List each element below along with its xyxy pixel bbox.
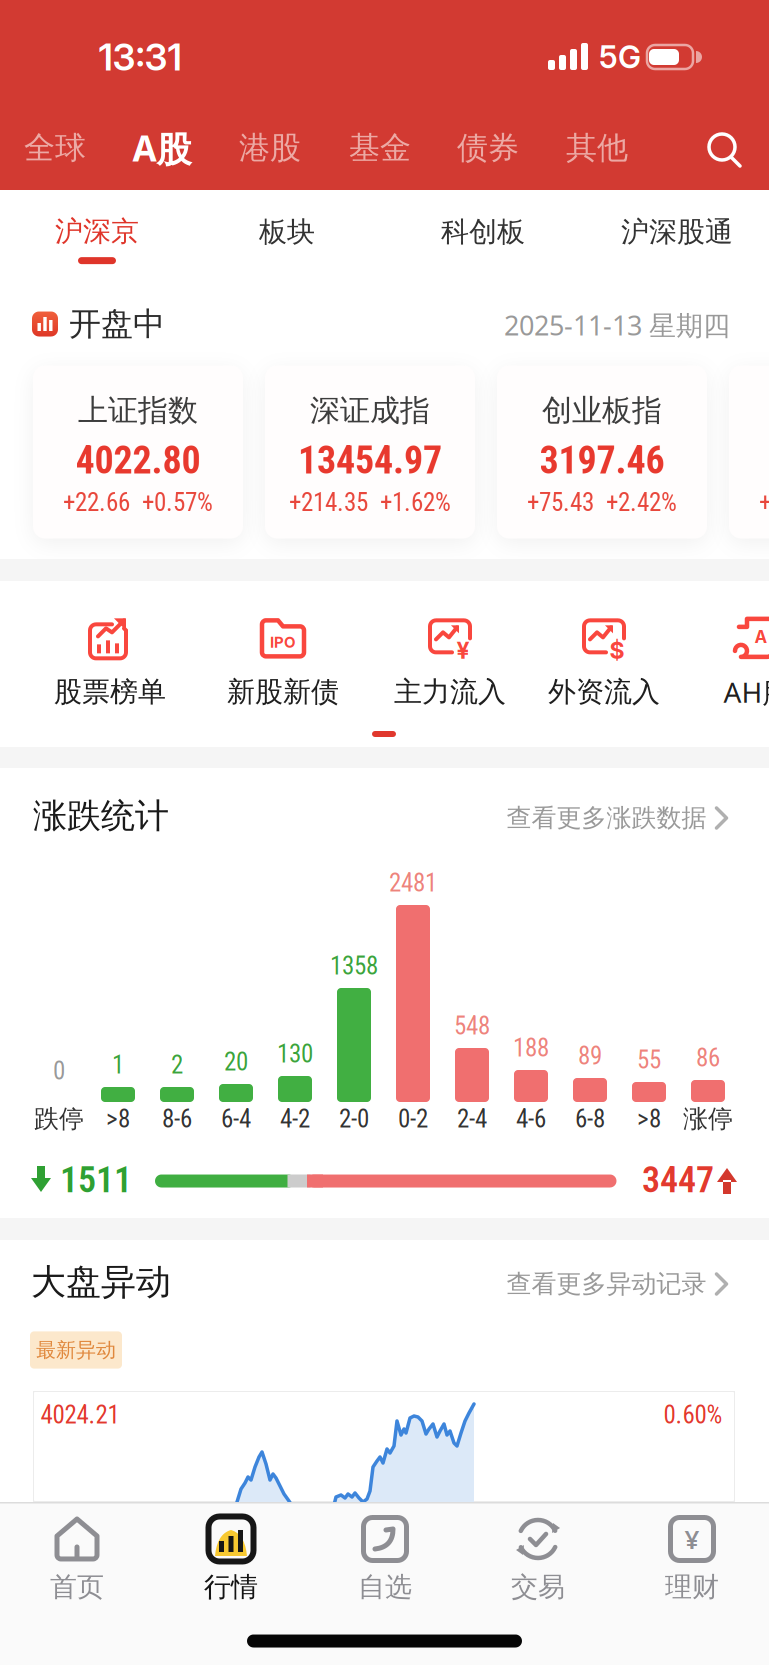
staticText: 查看更多涨跌数据 [506, 802, 706, 834]
staticText: 2 [171, 1050, 183, 1080]
staticText: 6-8 [575, 1104, 605, 1134]
button[interactable]: 港股 [239, 120, 301, 176]
staticText: +2.42% [606, 488, 677, 517]
button[interactable]: 股票榜单 [54, 614, 166, 710]
staticText: 基金 [349, 128, 411, 168]
staticText: 外资流入 [548, 674, 660, 710]
button[interactable]: A [723, 613, 769, 711]
staticText: +75.43 [527, 488, 594, 517]
staticText: 86 [696, 1043, 720, 1073]
button[interactable]: 基金 [349, 120, 411, 176]
staticText: 8-6 [162, 1104, 192, 1134]
button[interactable]: 沪深京 [55, 214, 139, 264]
staticText: 548 [454, 1011, 490, 1041]
staticText: +0.57% [142, 488, 213, 517]
button[interactable]: 自选 [358, 1516, 412, 1604]
button[interactable]: $ [548, 614, 660, 710]
button[interactable]: 查看更多涨跌数据 [506, 802, 729, 834]
staticText: $ [609, 636, 624, 664]
staticText: 13:31 [98, 35, 181, 79]
button[interactable]: 上证指数 [33, 365, 243, 538]
staticText: A [754, 627, 767, 647]
button[interactable]: ¥ [665, 1516, 719, 1604]
staticText: 0.60% [663, 1400, 722, 1430]
button[interactable]: 科创板 [441, 214, 525, 250]
staticText: 1511 [60, 1159, 132, 1201]
staticText: 4024.21 [40, 1400, 119, 1430]
button[interactable]: 首页 [50, 1516, 104, 1604]
staticText: 涨跌统计 [33, 795, 169, 837]
staticText: 沪深京 [55, 214, 139, 249]
staticText: +60.22 [759, 488, 769, 517]
staticText: 0 [53, 1056, 65, 1086]
staticText: ¥ [684, 1521, 699, 1557]
staticText: 4-2 [280, 1104, 310, 1134]
staticText: 其他 [566, 128, 628, 168]
staticText: 主力流入 [394, 674, 506, 710]
staticText: 自选 [358, 1570, 412, 1604]
button[interactable]: 查看更多异动记录 [506, 1268, 729, 1300]
staticText: 55 [637, 1045, 661, 1075]
button[interactable]: 板块 [259, 214, 315, 250]
staticText: 5G [599, 38, 641, 76]
staticText: 130 [277, 1039, 313, 1069]
button[interactable]: 交易 [511, 1516, 565, 1604]
button[interactable]: ¥ [394, 614, 506, 710]
button[interactable]: 沪深股通 [621, 214, 733, 250]
button[interactable]: 搜索 [704, 129, 744, 169]
staticText: 2481 [389, 868, 437, 898]
staticText: 1 [112, 1050, 124, 1080]
staticText: 板块 [259, 214, 315, 250]
staticText: 港股 [239, 128, 301, 168]
staticText: 最新异动 [36, 1337, 116, 1363]
staticText: 行情 [204, 1570, 258, 1604]
staticText: 4-6 [516, 1104, 546, 1134]
staticText: 20 [224, 1047, 248, 1077]
staticText: 2-0 [339, 1104, 369, 1134]
staticText: >8 [106, 1104, 130, 1134]
staticText: 大盘异动 [31, 1260, 171, 1304]
staticText: 13454.97 [298, 438, 442, 483]
staticText: 首页 [50, 1570, 104, 1604]
staticText: 新股新债 [227, 674, 339, 710]
staticText: 188 [513, 1033, 549, 1063]
staticText: IPO [270, 633, 296, 651]
staticText: 理财 [665, 1570, 719, 1604]
staticText: 0-2 [398, 1104, 428, 1134]
staticText: 交易 [511, 1570, 565, 1604]
staticText: 3447 [642, 1159, 714, 1201]
staticText: A股 [132, 124, 191, 172]
staticText: 1358 [330, 951, 378, 981]
button[interactable]: 最新异动 [30, 1331, 122, 1369]
staticText: 债券 [457, 128, 519, 168]
button[interactable]: 沪深300 [729, 365, 769, 538]
button[interactable]: A股 [132, 120, 191, 176]
button[interactable]: 其他 [566, 120, 628, 176]
button[interactable]: IPO [227, 614, 339, 710]
button[interactable]: 创业板指 [497, 365, 707, 538]
staticText: ¥ [456, 636, 469, 664]
staticText: 上证指数 [78, 392, 198, 429]
button[interactable]: 行情 [204, 1516, 258, 1604]
staticText: 4022.80 [75, 438, 200, 483]
button[interactable]: 全球 [24, 120, 86, 176]
staticText: 科创板 [441, 214, 525, 250]
button[interactable]: 深证成指 [265, 365, 475, 538]
staticText: >8 [637, 1104, 661, 1134]
staticText: 2025-11-13 星期四 [504, 307, 730, 343]
staticText: +22.66 [63, 488, 130, 517]
staticText: 89 [578, 1041, 602, 1071]
staticText: AH股 [723, 673, 769, 711]
staticText: 股票榜单 [54, 674, 166, 710]
staticText: 深证成指 [310, 392, 430, 429]
staticText: 全球 [24, 128, 86, 168]
staticText: +1.62% [380, 488, 451, 517]
staticText: 查看更多异动记录 [506, 1268, 706, 1300]
button[interactable]: 4024.21 [33, 1391, 735, 1502]
button[interactable]: 债券 [457, 120, 519, 176]
staticText: 3197.46 [539, 438, 664, 483]
staticText: 跌停 [34, 1103, 84, 1135]
staticText: 涨停 [683, 1103, 733, 1135]
staticText: 2-4 [457, 1104, 487, 1134]
staticText: 沪深股通 [621, 214, 733, 250]
